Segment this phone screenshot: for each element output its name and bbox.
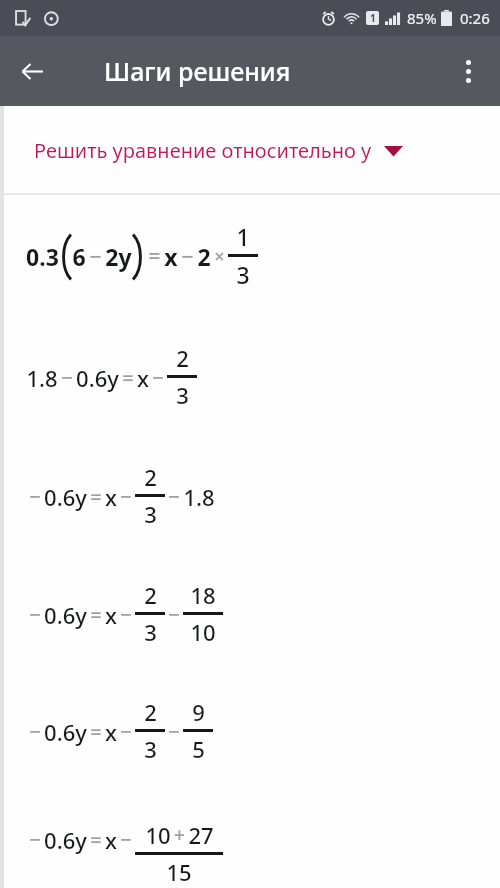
- staticText: 0.6y: [44, 482, 87, 512]
- staticText: 85%: [407, 8, 437, 28]
- staticText: −: [181, 242, 194, 271]
- button[interactable]: −: [4, 673, 500, 790]
- button[interactable]: Решить уравнение относительно y: [4, 106, 500, 195]
- staticText: x: [137, 363, 149, 393]
- staticText: 1: [236, 221, 250, 252]
- staticText: +: [174, 822, 185, 848]
- staticText: 0.3: [26, 241, 59, 272]
- staticText: −: [152, 364, 164, 391]
- button[interactable]: −: [4, 790, 500, 888]
- staticText: x: [105, 600, 117, 630]
- staticText: =: [122, 364, 134, 391]
- button[interactable]: Назад: [8, 47, 56, 95]
- staticText: 0:26: [460, 8, 490, 28]
- staticText: 10: [190, 617, 216, 647]
- staticText: 0.6y: [44, 825, 87, 855]
- staticText: −: [168, 718, 180, 745]
- button[interactable]: −: [4, 555, 500, 673]
- staticText: x: [164, 241, 178, 272]
- staticText: 0.6y: [76, 363, 119, 393]
- staticText: −: [29, 483, 41, 510]
- button[interactable]: 0.3: [4, 195, 500, 317]
- staticText: 2: [176, 343, 189, 373]
- staticText: −: [120, 826, 132, 853]
- staticText: 2: [197, 241, 211, 272]
- staticText: =: [90, 826, 102, 853]
- button[interactable]: 1.8: [4, 317, 500, 437]
- button[interactable]: −: [4, 437, 500, 555]
- staticText: 0.6y: [44, 717, 87, 747]
- staticText: 3: [144, 734, 157, 764]
- staticText: 3: [176, 380, 189, 410]
- staticText: 6: [72, 241, 86, 272]
- staticText: −: [61, 364, 73, 391]
- staticText: −: [29, 601, 41, 628]
- staticText: 1: [370, 11, 376, 25]
- staticText: −: [120, 601, 132, 628]
- staticText: −: [168, 601, 180, 628]
- staticText: =: [90, 718, 102, 745]
- staticText: 9: [192, 697, 205, 727]
- staticText: 10: [145, 820, 171, 850]
- staticText: −: [168, 483, 180, 510]
- button[interactable]: Ещё: [444, 47, 492, 95]
- staticText: Решить уравнение относительно y: [34, 137, 372, 164]
- staticText: =: [90, 601, 102, 628]
- staticText: 5: [192, 734, 205, 764]
- staticText: −: [29, 826, 41, 853]
- staticText: −: [120, 718, 132, 745]
- staticText: =: [148, 242, 161, 271]
- staticText: =: [90, 483, 102, 510]
- staticText: 18: [190, 580, 216, 610]
- staticText: 0.6y: [44, 600, 87, 630]
- staticText: −: [89, 242, 102, 271]
- staticText: 2: [144, 697, 157, 727]
- staticText: ×: [214, 244, 225, 269]
- staticText: Шаги решения: [104, 54, 291, 88]
- staticText: 3: [144, 499, 157, 529]
- staticText: 3: [236, 259, 250, 290]
- staticText: x: [105, 482, 117, 512]
- staticText: 3: [144, 617, 157, 647]
- staticText: −: [120, 483, 132, 510]
- staticText: 27: [188, 820, 214, 850]
- staticText: 15: [166, 857, 192, 887]
- staticText: 2: [144, 580, 157, 610]
- staticText: 1.8: [183, 482, 215, 512]
- staticText: −: [29, 718, 41, 745]
- staticText: x: [105, 825, 117, 855]
- staticText: x: [105, 717, 117, 747]
- staticText: 2: [144, 462, 157, 492]
- staticText: 1.8: [26, 363, 58, 393]
- staticText: 2y: [105, 241, 132, 272]
